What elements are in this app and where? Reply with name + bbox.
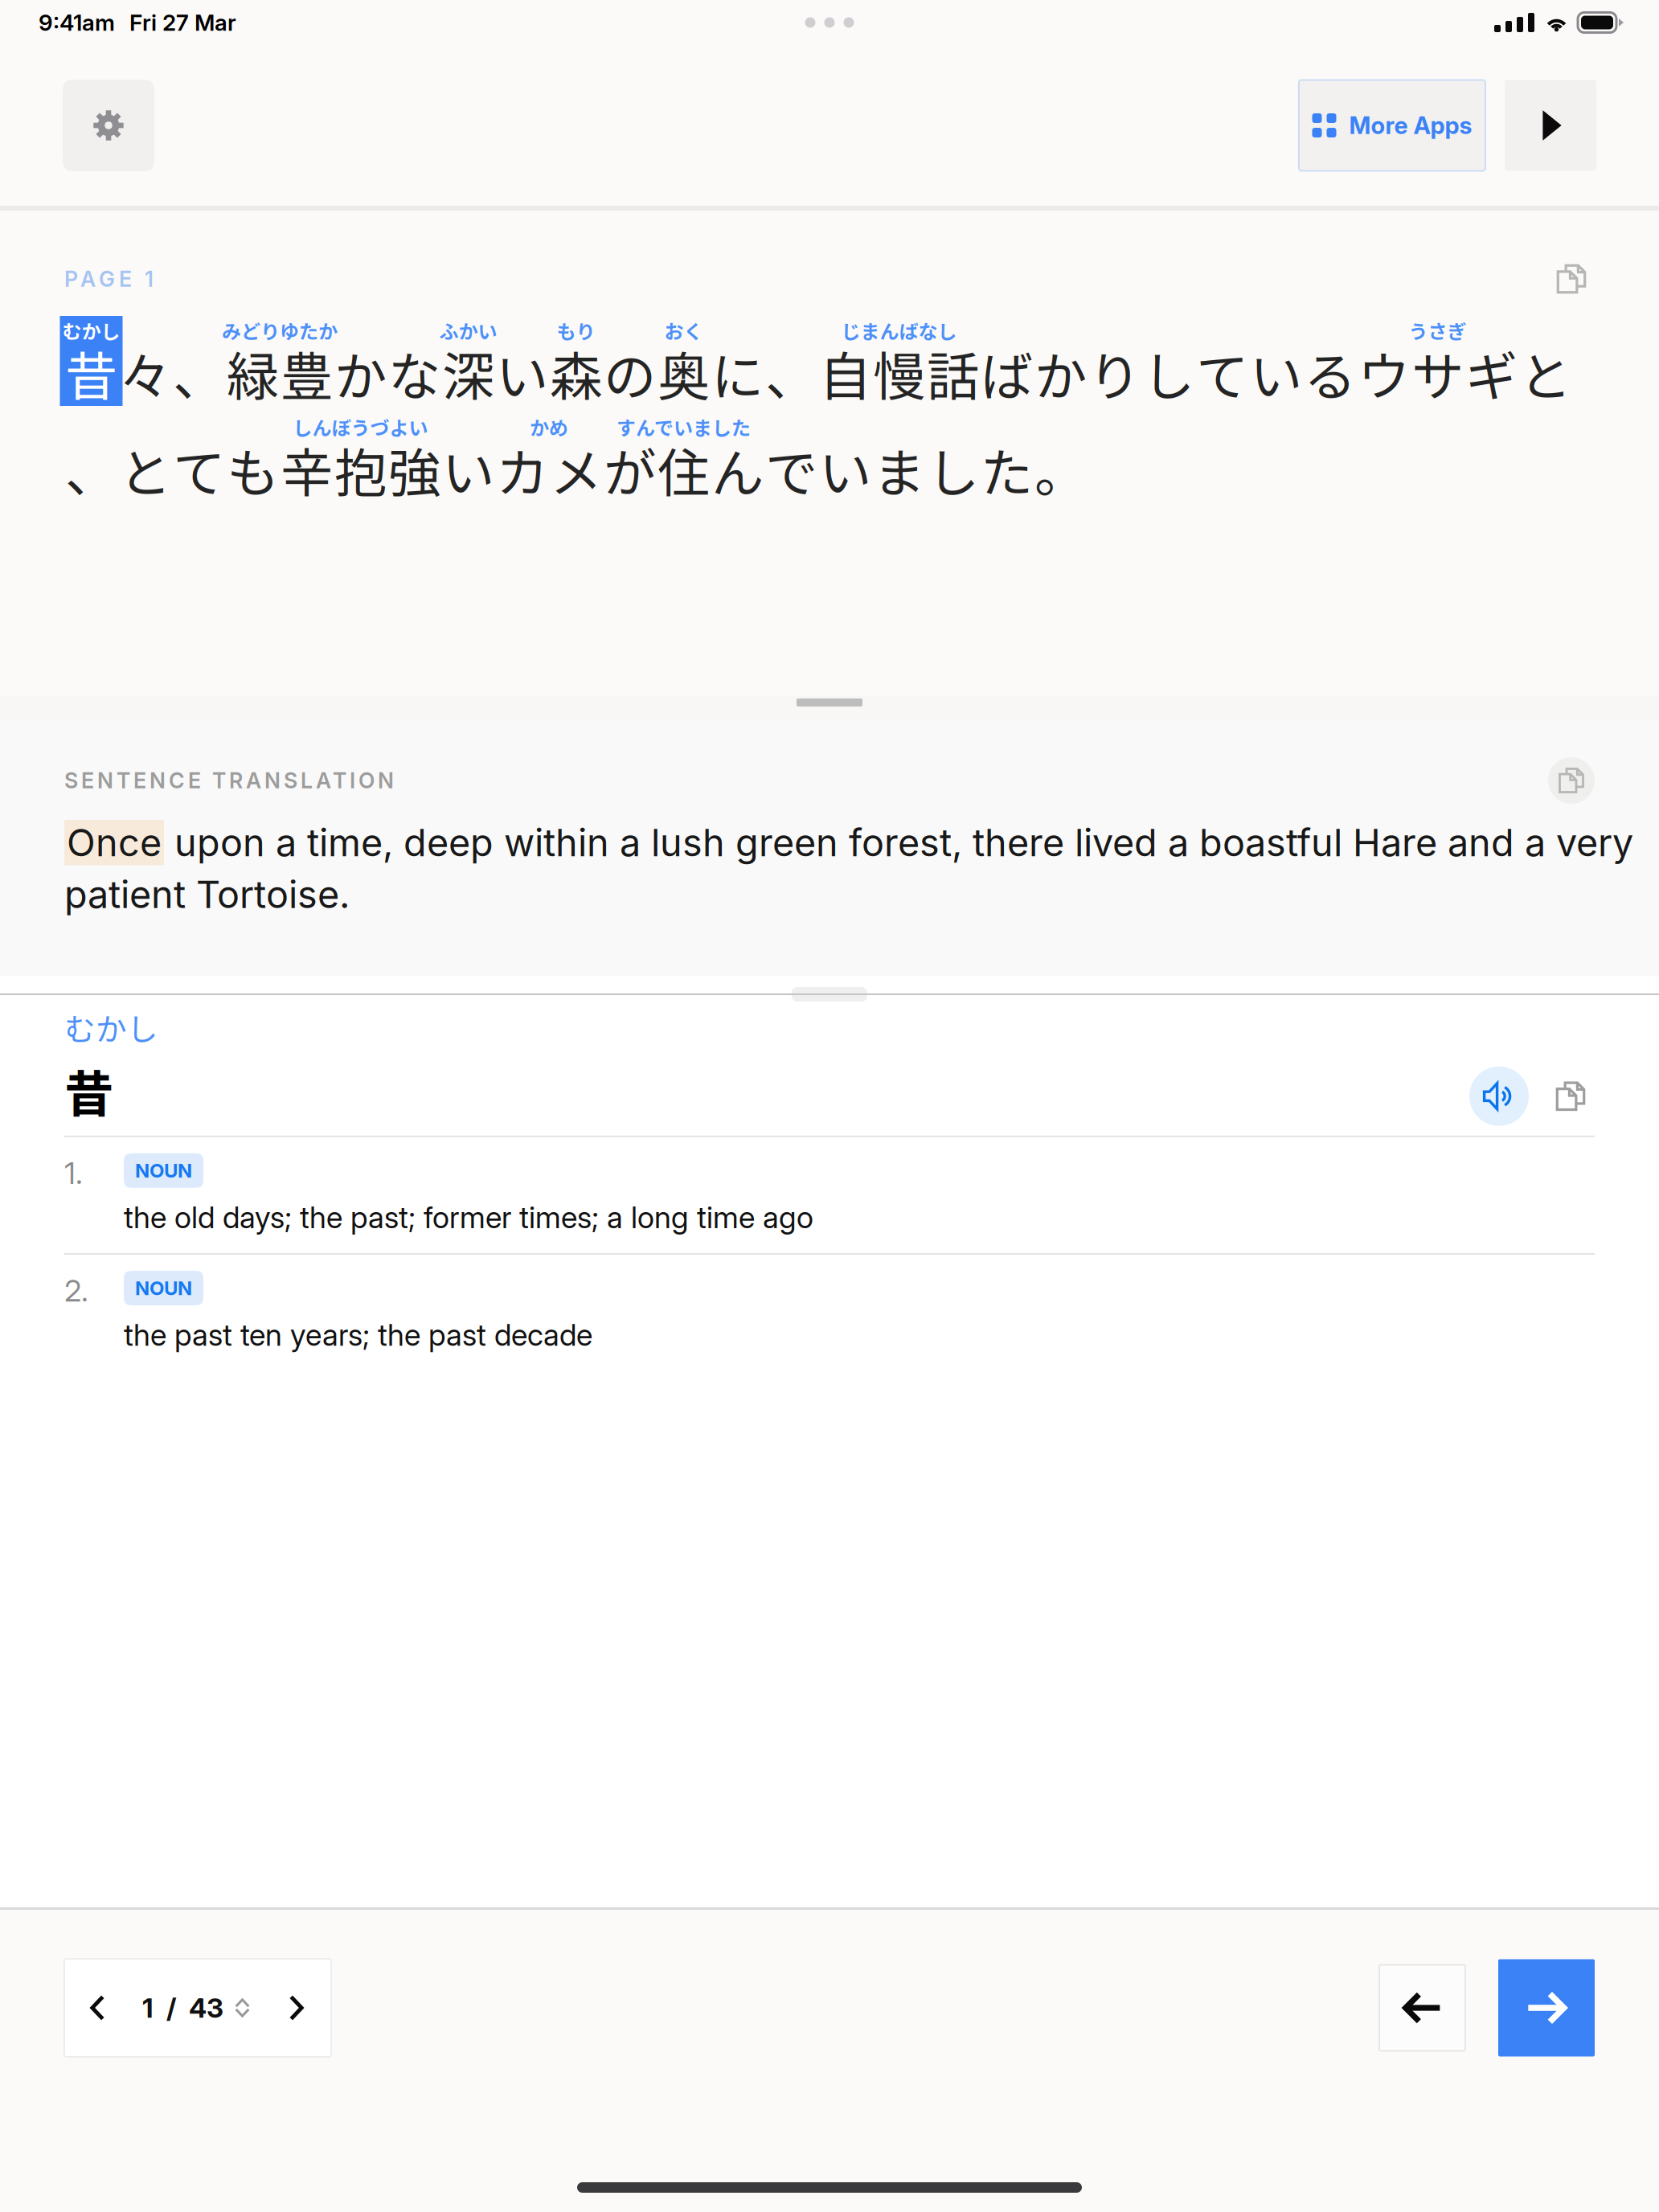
staticText: patient Tortoise. xyxy=(64,872,350,917)
staticText: 豊 xyxy=(281,335,333,411)
button[interactable]: Play xyxy=(1505,80,1596,171)
staticText: ん xyxy=(711,431,764,507)
staticText: 昔 xyxy=(64,1055,113,1126)
staticText: し xyxy=(1142,335,1194,411)
button[interactable]: More Apps xyxy=(1299,80,1485,171)
staticText: ば xyxy=(981,335,1033,411)
staticText: the past ten years; the past decade xyxy=(124,1317,592,1353)
staticText: 森 xyxy=(550,335,602,411)
staticText: 、 xyxy=(65,431,117,507)
staticText: かめ xyxy=(530,413,568,441)
staticText: 辛 xyxy=(281,431,333,507)
staticText: か xyxy=(334,335,387,411)
staticText: カ xyxy=(496,431,548,507)
button[interactable]: Copy sentence xyxy=(1548,256,1595,302)
staticText: 1. xyxy=(64,1155,83,1191)
staticText: に xyxy=(711,335,764,411)
staticText: / xyxy=(166,1992,176,2024)
staticText: て xyxy=(1196,335,1248,411)
staticText: ウ xyxy=(1358,335,1410,411)
staticText: うさぎ xyxy=(1409,316,1466,344)
staticText: て xyxy=(173,431,225,507)
button[interactable]: 1 xyxy=(64,1959,331,2057)
button[interactable]: Copy translation xyxy=(1548,757,1595,804)
staticText: SENTENCE TRANSLATION xyxy=(64,768,394,793)
staticText: 、 xyxy=(173,335,225,411)
staticText: サ xyxy=(1411,335,1464,411)
staticText: し xyxy=(927,431,979,507)
button[interactable]: Previous xyxy=(1379,1965,1465,2051)
staticText: も xyxy=(227,431,279,507)
staticText: the old days; the past; former times; a … xyxy=(124,1199,813,1235)
staticText: 9:41am xyxy=(39,9,115,36)
staticText: ふかい xyxy=(439,316,497,344)
staticText: で xyxy=(765,431,817,507)
staticText: 緑 xyxy=(227,335,279,411)
staticText: 々 xyxy=(119,335,171,411)
staticText: 抱 xyxy=(334,431,387,507)
staticText: すんでいました xyxy=(616,413,751,441)
staticText: 奥 xyxy=(657,335,710,411)
staticText: と xyxy=(119,431,171,507)
button[interactable]: Settings xyxy=(63,80,154,171)
staticText: と xyxy=(1519,335,1571,411)
staticText: た xyxy=(981,431,1033,507)
staticText: い xyxy=(1250,335,1302,411)
staticText: しんぼうづよい xyxy=(293,413,428,441)
staticText: みどりゆたか xyxy=(222,316,338,344)
staticText: る xyxy=(1304,335,1356,411)
staticText: か xyxy=(1034,335,1087,411)
staticText: むかし xyxy=(64,1005,158,1050)
staticText: 話 xyxy=(927,335,979,411)
staticText: の xyxy=(604,335,656,411)
staticText: が xyxy=(604,431,656,507)
staticText: い xyxy=(819,431,871,507)
staticText: 。 xyxy=(1034,431,1087,507)
staticText: 自 xyxy=(819,335,871,411)
button[interactable]: Next xyxy=(1498,1959,1595,2056)
staticText: upon a time, deep within a lush green fo… xyxy=(164,820,1633,865)
staticText: NOUN xyxy=(135,1159,192,1182)
staticText: おく xyxy=(664,316,703,344)
staticText: もり xyxy=(557,316,595,344)
staticText: Fri 27 Mar xyxy=(129,9,236,36)
staticText: 強 xyxy=(388,431,440,507)
staticText: 2. xyxy=(64,1272,88,1309)
staticText: 深 xyxy=(442,335,494,411)
staticText: 住 xyxy=(657,431,710,507)
staticText: じまんばなし xyxy=(841,316,957,344)
staticText: むかし xyxy=(62,316,120,344)
button[interactable]: Pronounce xyxy=(1469,1066,1529,1126)
staticText: メ xyxy=(550,431,602,507)
staticText: り xyxy=(1088,335,1141,411)
staticText: 昔 xyxy=(65,335,117,411)
staticText: 、 xyxy=(765,335,817,411)
staticText: More Apps xyxy=(1349,111,1472,140)
staticText: い xyxy=(442,431,494,507)
staticText: NOUN xyxy=(135,1276,192,1300)
staticText: PAGE 1 xyxy=(64,266,154,292)
staticText: 慢 xyxy=(873,335,925,411)
button[interactable]: Copy word xyxy=(1546,1066,1595,1126)
staticText: ギ xyxy=(1465,335,1518,411)
staticText: ま xyxy=(873,431,925,507)
staticText: Once xyxy=(67,820,162,865)
staticText: 43 xyxy=(189,1992,223,2024)
staticText: い xyxy=(496,335,548,411)
staticText: 1 xyxy=(142,1992,154,2024)
staticText: な xyxy=(388,335,440,411)
